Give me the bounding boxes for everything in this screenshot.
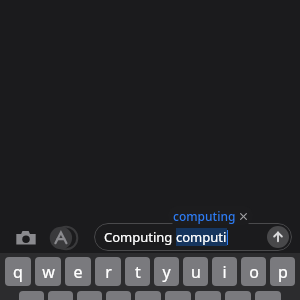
button[interactable]: h xyxy=(165,291,191,300)
button[interactable]: i xyxy=(212,257,237,286)
button[interactable]: Apps xyxy=(50,225,76,251)
staticText: e xyxy=(73,261,83,283)
button[interactable]: e xyxy=(65,257,91,286)
button[interactable]: u xyxy=(183,257,208,286)
button[interactable]: o xyxy=(241,257,266,286)
button[interactable]: p xyxy=(270,257,295,286)
button[interactable]: f xyxy=(106,291,131,300)
button[interactable]: d xyxy=(77,291,102,300)
staticText: Computing xyxy=(104,228,176,246)
button[interactable]: l xyxy=(255,291,281,300)
staticText: q xyxy=(13,261,23,283)
staticText: r xyxy=(105,261,112,283)
staticText: computing xyxy=(173,208,236,224)
button[interactable]: Computing xyxy=(94,223,292,251)
button[interactable]: computing xyxy=(173,206,248,225)
staticText: i xyxy=(222,261,227,283)
staticText: computi xyxy=(176,228,227,246)
staticText: t xyxy=(135,261,141,283)
staticText: o xyxy=(249,261,259,283)
staticText: y xyxy=(162,261,171,283)
button[interactable]: w xyxy=(35,257,61,286)
button[interactable]: y xyxy=(154,257,179,286)
button[interactable]: r xyxy=(95,257,121,286)
button[interactable]: s xyxy=(48,291,73,300)
staticText: p xyxy=(278,261,288,283)
button[interactable]: Send xyxy=(267,226,289,248)
button[interactable]: q xyxy=(5,257,31,286)
button[interactable]: t xyxy=(125,257,150,286)
button[interactable]: Camera xyxy=(13,225,39,251)
staticText: w xyxy=(42,261,55,283)
staticText: u xyxy=(191,261,201,283)
button[interactable]: a xyxy=(19,291,44,300)
button[interactable]: j xyxy=(195,291,221,300)
button[interactable]: k xyxy=(225,291,251,300)
button[interactable]: g xyxy=(135,291,161,300)
